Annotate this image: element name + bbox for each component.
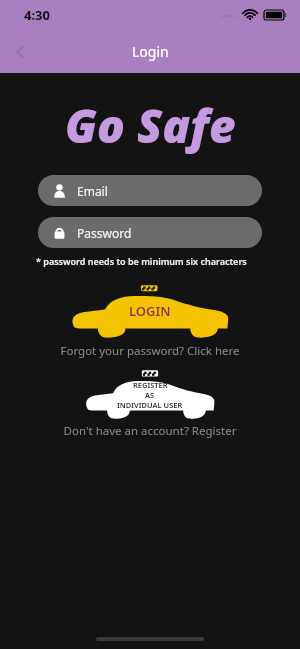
staticText: AS [145,390,155,400]
staticText: Login [132,42,169,61]
staticText: * password needs to be minimum six chara… [36,255,300,267]
button[interactable]: Register as individual user [85,367,215,419]
button[interactable]: Password [38,217,262,248]
staticText: Password [77,225,132,241]
staticText: Email [77,183,108,199]
staticText: INDIVIDUAL USER [117,400,183,410]
button[interactable]: Login [71,282,229,338]
button[interactable]: Forgot your password? Click here [0,341,300,361]
staticText: LOGIN [129,302,171,320]
staticText: 4:30 [24,6,50,24]
button[interactable]: Don't have an account? Register [0,421,300,441]
staticText: REGISTER [133,380,168,390]
staticText: Go Safe [65,94,236,157]
button[interactable]: Email [38,175,262,206]
